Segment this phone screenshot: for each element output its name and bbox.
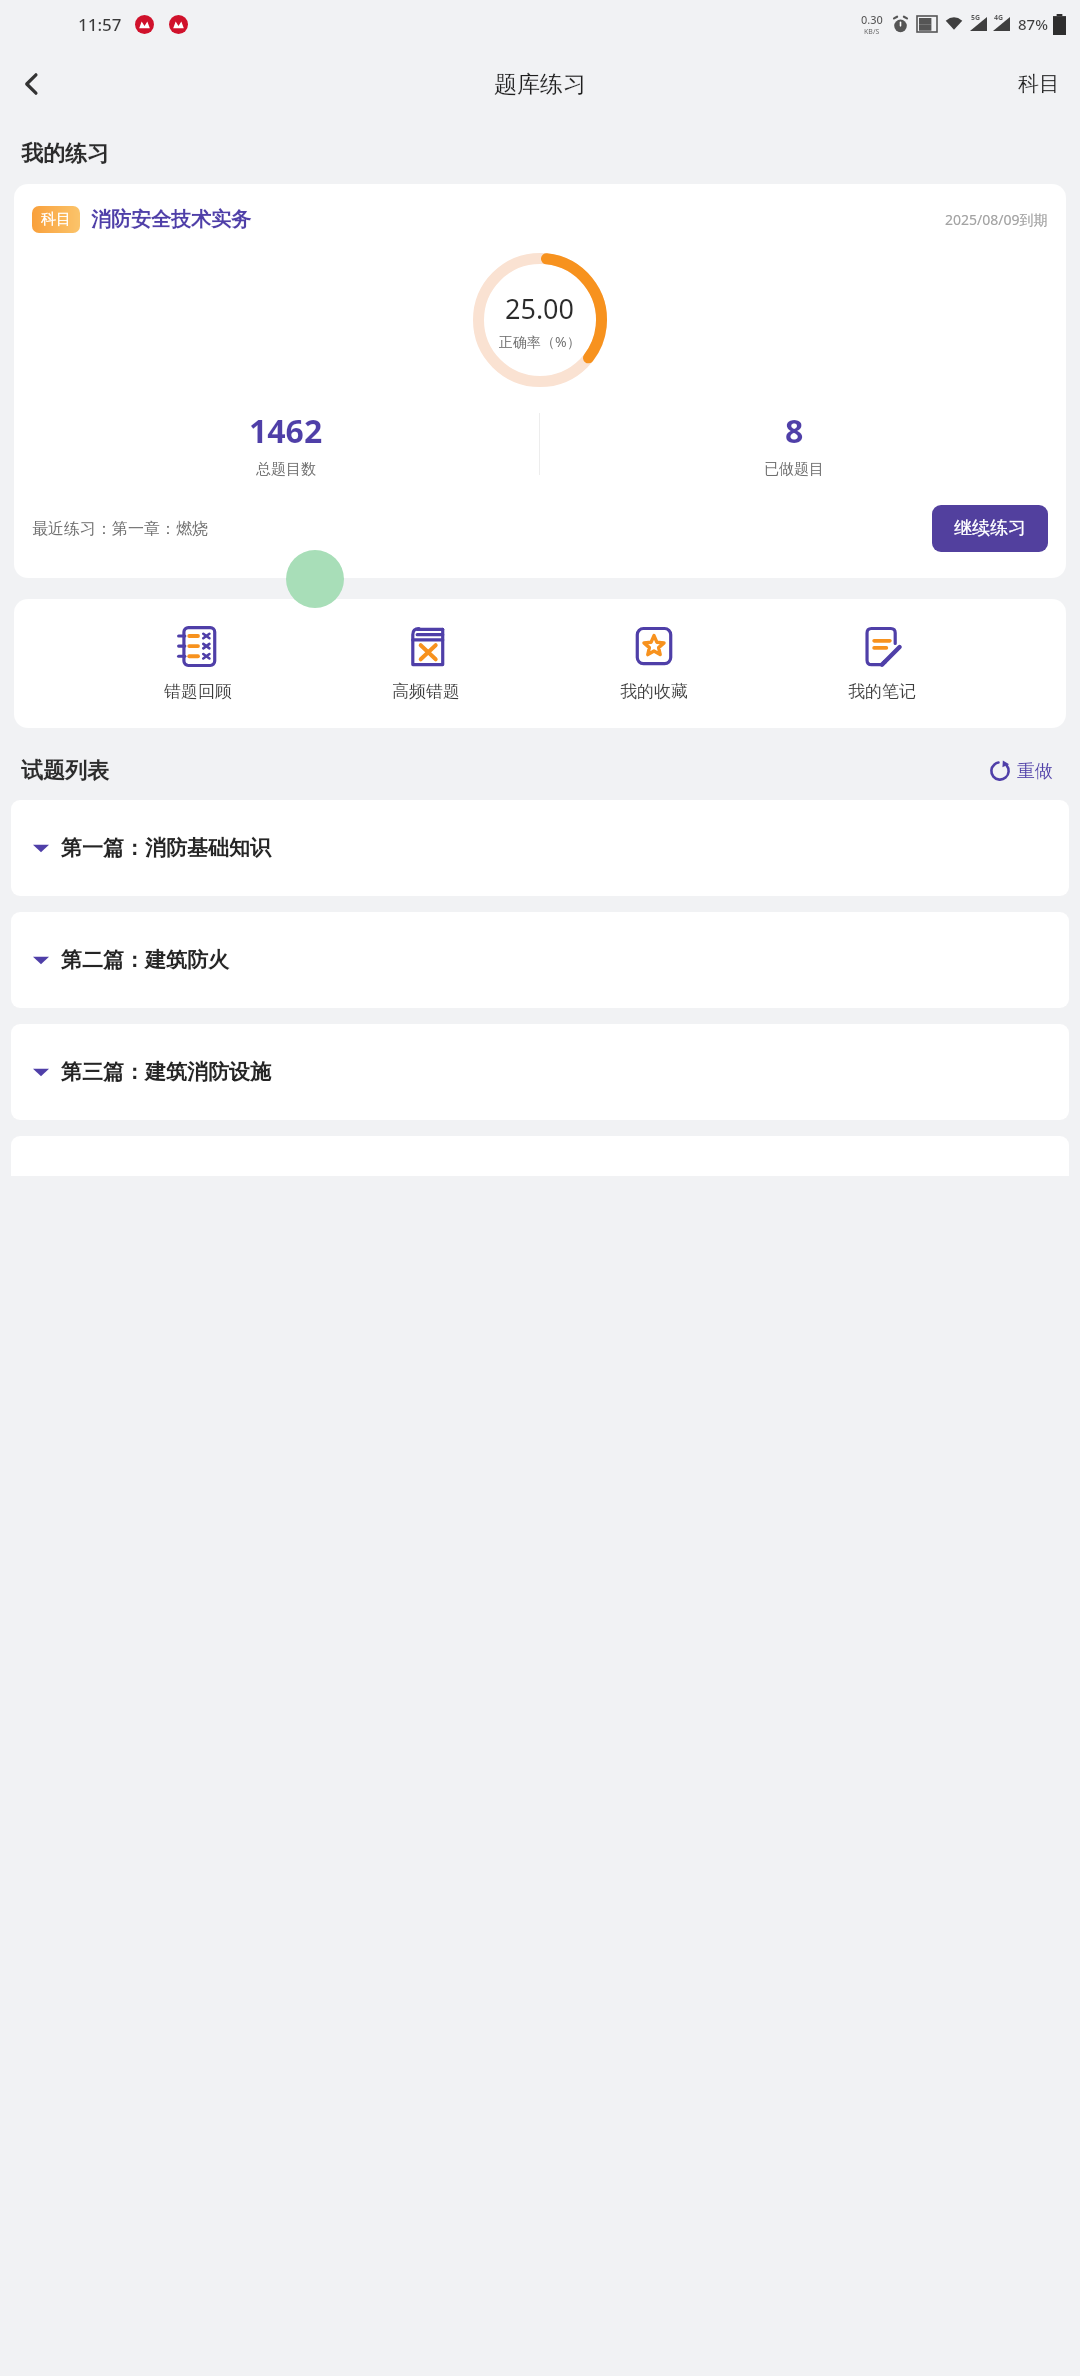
- staticText: 我的练习: [21, 140, 109, 168]
- staticText: 重做: [1017, 760, 1053, 783]
- button[interactable]: 错题回顾: [154, 625, 242, 702]
- staticText: 最近练习：第一章：燃烧: [32, 519, 208, 539]
- button[interactable]: 科目: [998, 57, 1080, 111]
- staticText: 总题目数: [256, 460, 316, 479]
- staticText: 25.00: [505, 290, 575, 327]
- staticText: 8: [785, 409, 804, 453]
- staticText: 4G: [994, 13, 1004, 23]
- button[interactable]: Assistant bubble: [286, 550, 344, 608]
- staticText: 我的笔记: [848, 681, 916, 702]
- staticText: 高频错题: [392, 681, 460, 702]
- staticText: 试题列表: [21, 757, 109, 785]
- staticText: 继续练习: [954, 517, 1026, 540]
- button[interactable]: 我的收藏: [610, 625, 698, 702]
- staticText: 2025/08/09到期: [945, 210, 1048, 229]
- staticText: 题库练习: [494, 70, 586, 99]
- button[interactable]: 第一篇：消防基础知识: [11, 800, 1069, 896]
- staticText: 错题回顾: [164, 681, 232, 702]
- button[interactable]: 高频错题: [382, 625, 470, 702]
- button[interactable]: 继续练习: [932, 505, 1048, 552]
- staticText: 0.30: [861, 12, 883, 27]
- button[interactable]: 我的笔记: [838, 625, 926, 702]
- staticText: 第一篇：消防基础知识: [61, 835, 271, 861]
- staticText: KB/S: [864, 27, 880, 37]
- staticText: 科目: [1018, 71, 1060, 97]
- staticText: 第二篇：建筑防火: [61, 947, 229, 973]
- staticText: 已做题目: [764, 460, 824, 479]
- button[interactable]: 科目: [14, 184, 1066, 578]
- staticText: 11:57: [78, 13, 122, 36]
- staticText: 87%: [1018, 14, 1048, 34]
- staticText: 正确率（%）: [499, 332, 581, 351]
- staticText: 消防安全技术实务: [91, 207, 251, 232]
- staticText: 第三篇：建筑消防设施: [61, 1059, 271, 1085]
- button[interactable]: 第三篇：建筑消防设施: [11, 1024, 1069, 1120]
- button[interactable]: Back: [6, 58, 58, 110]
- button[interactable]: 重做: [982, 753, 1059, 789]
- staticText: 科目: [41, 210, 71, 229]
- staticText: 1462: [249, 409, 323, 453]
- staticText: 5G: [971, 13, 981, 23]
- button[interactable]: 第二篇：建筑防火: [11, 912, 1069, 1008]
- staticText: 我的收藏: [620, 681, 688, 702]
